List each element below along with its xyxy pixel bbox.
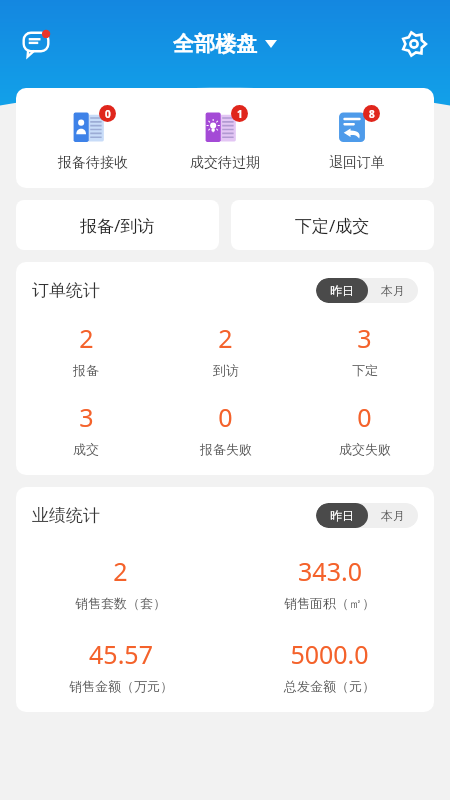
staticText: 订单统计 xyxy=(32,280,100,301)
staticText: 0 xyxy=(105,107,111,121)
staticText: 3 xyxy=(357,321,372,355)
button[interactable]: 0 xyxy=(295,400,434,457)
button[interactable]: 下定/成交 xyxy=(231,200,434,250)
staticText: 报备/到访 xyxy=(80,214,155,237)
button[interactable]: 343.0 xyxy=(225,554,434,611)
staticText: 昨日 xyxy=(330,508,354,523)
button[interactable]: 1 xyxy=(170,105,280,172)
button[interactable]: 本月 xyxy=(368,278,418,303)
button[interactable]: 3 xyxy=(295,321,434,378)
staticText: 报备待接收 xyxy=(58,154,128,172)
staticText: 全部楼盘 xyxy=(173,31,257,57)
button[interactable]: 报备/到访 xyxy=(16,200,219,250)
staticText: 成交待过期 xyxy=(190,154,260,172)
button[interactable]: 3 xyxy=(16,400,156,457)
staticText: 2 xyxy=(218,321,233,355)
staticText: 45.57 xyxy=(89,637,153,671)
staticText: 1 xyxy=(237,107,243,121)
button[interactable]: 全部楼盘 xyxy=(173,31,277,57)
button[interactable]: 8 xyxy=(302,105,412,172)
staticText: 报备失败 xyxy=(200,441,252,457)
button[interactable]: 昨日 xyxy=(316,503,368,528)
staticText: 总发金额（元） xyxy=(284,678,375,694)
staticText: 2 xyxy=(113,554,128,588)
button[interactable]: 0 xyxy=(156,400,295,457)
staticText: 343.0 xyxy=(298,554,362,588)
button[interactable]: 45.57 xyxy=(16,637,225,694)
staticText: 本月 xyxy=(381,283,405,298)
staticText: 销售金额（万元） xyxy=(69,678,173,694)
button[interactable]: 2 xyxy=(16,554,225,611)
staticText: 本月 xyxy=(381,508,405,523)
staticText: 到访 xyxy=(213,362,239,378)
staticText: 成交失败 xyxy=(339,441,391,457)
staticText: 成交 xyxy=(73,441,99,457)
staticText: 销售套数（套） xyxy=(75,595,166,611)
staticText: 业绩统计 xyxy=(32,505,100,526)
button[interactable]: Messages xyxy=(14,22,58,66)
staticText: 8 xyxy=(369,107,375,121)
button[interactable]: 2 xyxy=(16,321,156,378)
button[interactable]: Settings xyxy=(392,22,436,66)
staticText: 0 xyxy=(218,400,233,434)
button[interactable]: 昨日 xyxy=(316,278,368,303)
staticText: 退回订单 xyxy=(329,154,385,172)
staticText: 昨日 xyxy=(330,283,354,298)
staticText: 5000.0 xyxy=(290,637,369,671)
staticText: 2 xyxy=(79,321,94,355)
button[interactable]: 2 xyxy=(156,321,295,378)
staticText: 3 xyxy=(79,400,94,434)
button[interactable]: 0 xyxy=(38,105,148,172)
staticText: 0 xyxy=(357,400,372,434)
staticText: 销售面积（㎡） xyxy=(284,595,375,611)
staticText: 下定 xyxy=(352,362,378,378)
button[interactable]: 本月 xyxy=(368,503,418,528)
staticText: 报备 xyxy=(73,362,99,378)
staticText: 下定/成交 xyxy=(295,214,370,237)
button[interactable]: 5000.0 xyxy=(225,637,434,694)
